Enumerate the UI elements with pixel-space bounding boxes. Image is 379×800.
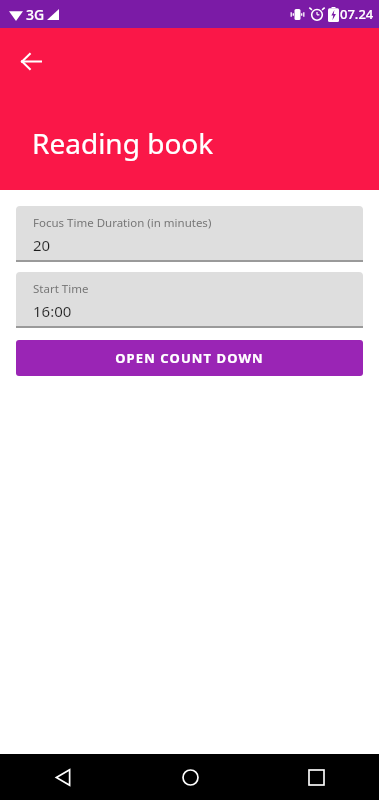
staticText: 3G — [26, 5, 45, 24]
button[interactable]: OPEN COUNT DOWN — [16, 340, 363, 376]
button[interactable]: Back — [0, 754, 127, 800]
button[interactable]: Recent apps — [253, 754, 379, 800]
staticText: Start Time — [33, 281, 89, 297]
staticText: 07.24 — [340, 5, 374, 23]
button[interactable]: Home — [127, 754, 253, 800]
button[interactable]: Focus Time Duration (in minutes) — [16, 206, 363, 262]
button[interactable]: Start Time — [16, 272, 363, 328]
staticText: 16:00 — [33, 301, 72, 321]
staticText: Reading book — [32, 124, 214, 162]
button[interactable]: Back — [10, 40, 52, 82]
staticText: Focus Time Duration (in minutes) — [33, 215, 212, 231]
staticText: OPEN COUNT DOWN — [115, 349, 264, 367]
staticText: 20 — [33, 235, 51, 255]
